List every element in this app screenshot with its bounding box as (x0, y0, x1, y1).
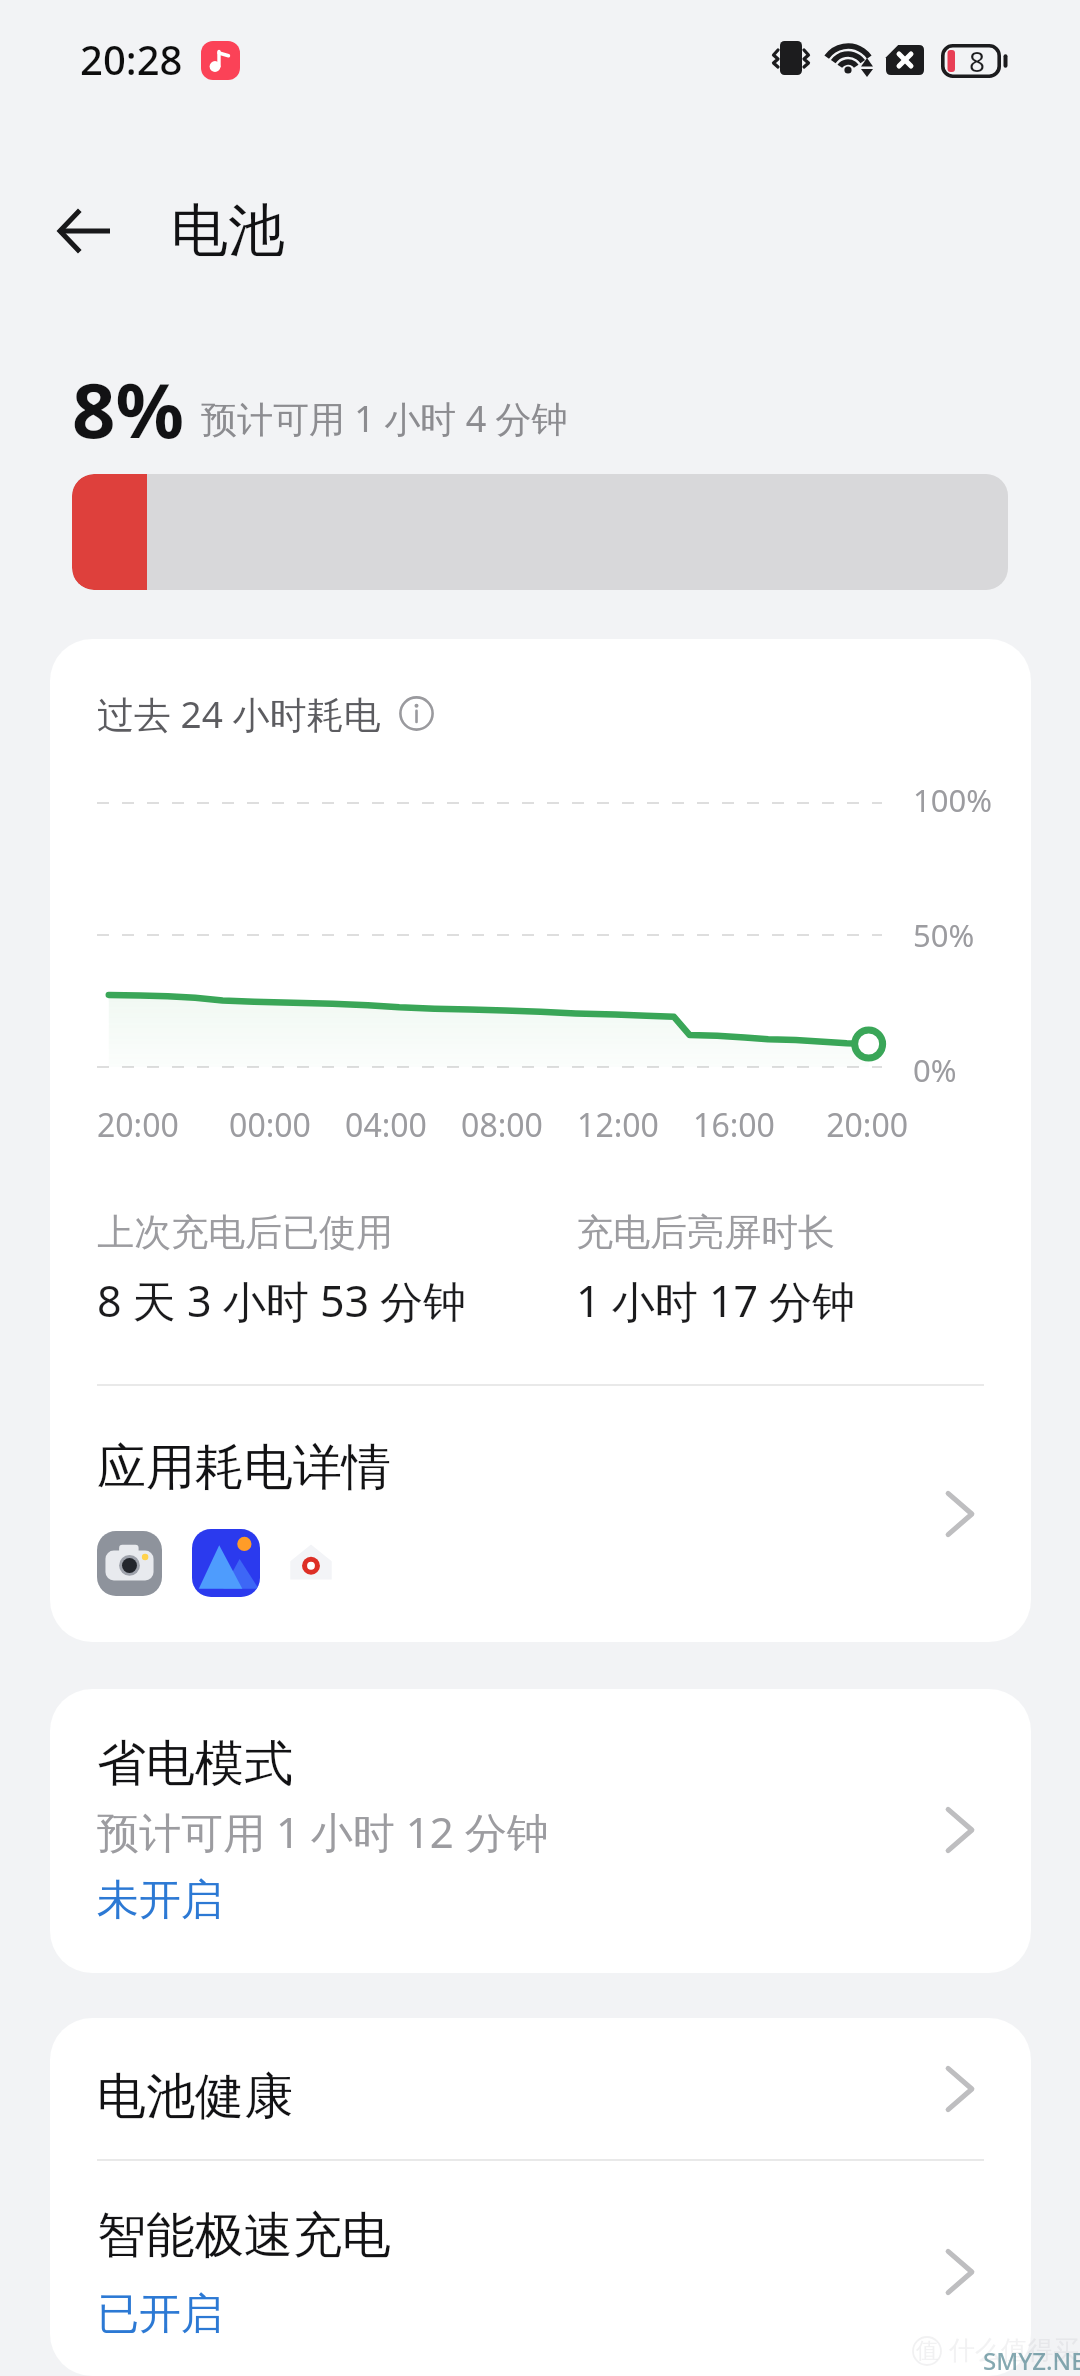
staticText: 充电后亮屏时长 (576, 1209, 835, 1256)
staticText: 50% (913, 914, 975, 956)
staticText: 过去 24 小时耗电 (97, 688, 381, 739)
button[interactable]: 省电模式 (50, 1689, 1031, 1973)
staticText: 12:00 (560, 1103, 676, 1147)
staticText: 20:28 (80, 32, 183, 86)
staticText: 智能极速充电 (97, 2205, 391, 2267)
staticText: 省电模式 (97, 1733, 293, 1795)
staticText: 未开启 (97, 1874, 223, 1927)
staticText: 0% (913, 1049, 957, 1091)
staticText: 8% (72, 357, 185, 461)
staticText: 08:00 (444, 1103, 560, 1147)
staticText: 20:00 (97, 1103, 212, 1147)
button[interactable]: 智能极速充电 (50, 2161, 1031, 2376)
staticText: 100% (913, 779, 992, 821)
staticText: 值 (916, 2337, 938, 2365)
staticText: 8 天 3 小时 53 分钟 (97, 1271, 467, 1330)
staticText: 16:00 (676, 1103, 792, 1147)
staticText: 应用耗电详情 (97, 1437, 391, 1499)
staticText: 预计可用 1 小时 12 分钟 (97, 1803, 549, 1860)
staticText: 8 (969, 42, 986, 80)
staticText: 00:00 (212, 1103, 328, 1147)
staticText: 电池 (171, 195, 285, 267)
staticText: 20:00 (792, 1103, 908, 1147)
staticText: 什么值得买 (949, 2334, 1079, 2367)
staticText: 04:00 (328, 1103, 444, 1147)
staticText: 1 小时 17 分钟 (576, 1271, 856, 1330)
staticText: 上次充电后已使用 (97, 1209, 393, 1256)
button[interactable]: Back (35, 183, 131, 279)
button[interactable]: 应用耗电详情 (50, 1386, 1031, 1642)
button[interactable]: 电池健康 (50, 2018, 1031, 2159)
button[interactable]: Info (399, 696, 434, 731)
staticText: 电池健康 (97, 2066, 933, 2128)
staticText: SMYZ.NET (983, 2344, 1080, 2376)
staticText: 预计可用 1 小时 4 分钟 (201, 394, 568, 443)
staticText: 已开启 (97, 2288, 223, 2338)
